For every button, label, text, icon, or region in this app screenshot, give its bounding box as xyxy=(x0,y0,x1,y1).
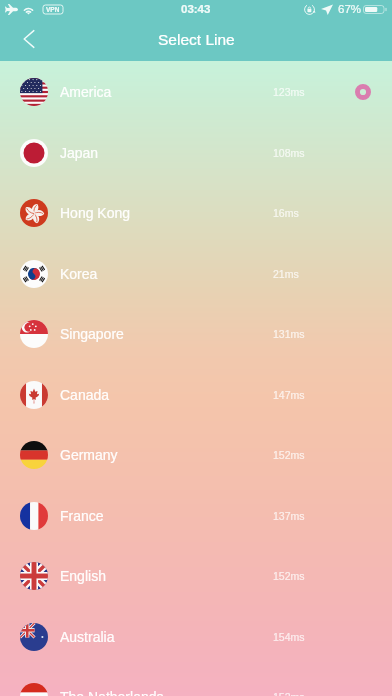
staticText: English xyxy=(60,568,106,584)
button[interactable]: English xyxy=(0,545,392,606)
button[interactable]: America xyxy=(0,61,392,122)
staticText: 152ms xyxy=(273,449,305,461)
staticText: 152ms xyxy=(273,691,305,696)
staticText: America xyxy=(60,84,112,100)
staticText: The Netherlands xyxy=(60,689,164,696)
button[interactable]: Australia xyxy=(0,606,392,667)
button[interactable]: Japan xyxy=(0,122,392,183)
staticText: 152ms xyxy=(273,570,305,582)
button[interactable]: Korea xyxy=(0,243,392,304)
staticText: Singapore xyxy=(60,326,124,342)
staticText: 21ms xyxy=(273,268,299,280)
staticText: Canada xyxy=(60,387,110,403)
button[interactable]: Back xyxy=(9,19,49,59)
staticText: Australia xyxy=(60,629,115,645)
button[interactable]: Germany xyxy=(0,424,392,485)
staticText: Japan xyxy=(60,145,99,161)
staticText: 147ms xyxy=(273,389,305,401)
staticText: Korea xyxy=(60,266,98,282)
button[interactable]: The Netherlands xyxy=(0,666,392,696)
staticText: Hong Kong xyxy=(60,205,131,221)
staticText: 108ms xyxy=(273,147,305,159)
staticText: France xyxy=(60,508,104,524)
button[interactable]: Hong Kong xyxy=(0,182,392,243)
staticText: 137ms xyxy=(273,510,305,522)
staticText: VPN xyxy=(46,6,60,13)
staticText: Germany xyxy=(60,447,118,463)
staticText: 154ms xyxy=(273,631,305,643)
staticText: 131ms xyxy=(273,328,305,340)
staticText: 67% xyxy=(338,3,362,16)
staticText: Select Line xyxy=(158,31,235,48)
button[interactable]: Singapore xyxy=(0,303,392,364)
button[interactable]: Canada xyxy=(0,364,392,425)
staticText: 123ms xyxy=(273,86,305,98)
staticText: 03:43 xyxy=(181,3,211,16)
staticText: 16ms xyxy=(273,207,299,219)
button[interactable]: France xyxy=(0,485,392,546)
